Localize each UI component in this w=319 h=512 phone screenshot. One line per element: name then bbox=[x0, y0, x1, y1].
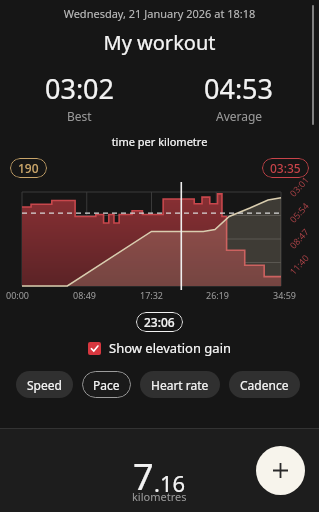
button[interactable]: Add bbox=[256, 446, 305, 495]
button[interactable]: Pace bbox=[93, 371, 120, 398]
staticText: Speed bbox=[27, 377, 62, 393]
staticText: 190 bbox=[18, 160, 39, 176]
staticText: 23:06 bbox=[144, 314, 175, 330]
staticText: 03:02 bbox=[45, 70, 115, 107]
staticText: 08:47 bbox=[286, 225, 311, 251]
staticText: 17:32 bbox=[140, 289, 164, 301]
button[interactable]: 03:35 bbox=[270, 160, 301, 176]
staticText: Cadence bbox=[240, 377, 289, 393]
staticText: Show elevation gain bbox=[109, 339, 232, 357]
staticText: Pace bbox=[93, 377, 120, 393]
staticText: My workout bbox=[0, 29, 319, 56]
staticText: time per kilometre bbox=[0, 134, 319, 149]
staticText: 05:54 bbox=[286, 199, 311, 225]
staticText: 08:49 bbox=[73, 289, 97, 301]
button[interactable]: 190 bbox=[18, 160, 39, 176]
staticText: 03:01 bbox=[286, 173, 311, 199]
staticText: kilometres bbox=[132, 489, 187, 504]
staticText: Best bbox=[67, 108, 92, 124]
staticText: .16 bbox=[154, 468, 186, 498]
staticText: 34:59 bbox=[273, 289, 297, 301]
staticText: 11:40 bbox=[286, 251, 311, 277]
staticText: Wednesday, 21 January 2026 at 18:18 bbox=[0, 6, 319, 21]
staticText: 00:00 bbox=[6, 289, 30, 301]
button[interactable]: Show elevation gain bbox=[0, 339, 319, 357]
staticText: 26:19 bbox=[206, 289, 230, 301]
staticText: 03:35 bbox=[270, 160, 301, 176]
button[interactable]: Heart rate bbox=[151, 371, 209, 398]
staticText: Average bbox=[216, 108, 263, 124]
staticText: 04:53 bbox=[204, 70, 274, 107]
staticText: Heart rate bbox=[151, 377, 209, 393]
button[interactable]: Cadence bbox=[240, 371, 289, 398]
button[interactable]: Speed bbox=[27, 371, 62, 398]
staticText: 7 bbox=[133, 452, 154, 501]
button[interactable]: 23:06 bbox=[144, 314, 175, 330]
